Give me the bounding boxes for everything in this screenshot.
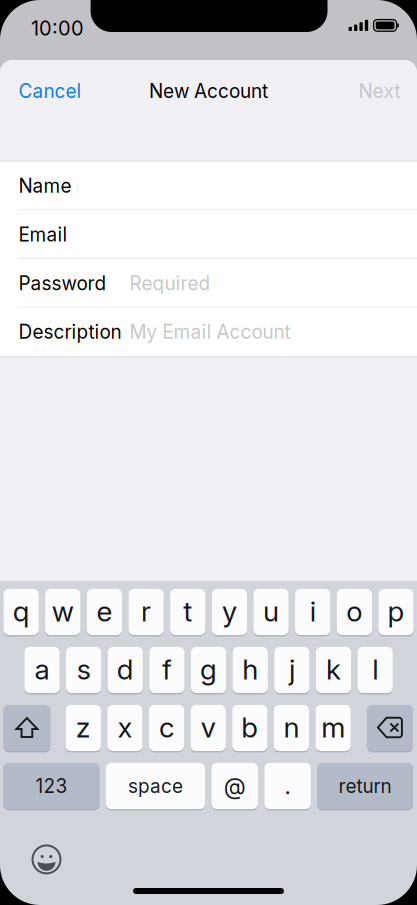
staticText: c (159, 710, 174, 744)
button[interactable]: u (253, 588, 289, 636)
staticText: f (162, 652, 172, 686)
staticText: New Account (149, 79, 268, 102)
staticText: l (372, 652, 378, 686)
staticText: Required (129, 272, 210, 295)
staticText: a (34, 652, 49, 686)
staticText: 10:00 (31, 16, 84, 40)
staticText: u (263, 594, 279, 628)
button[interactable]: g (191, 646, 226, 694)
button[interactable]: v (190, 704, 226, 752)
staticText: m (321, 710, 345, 744)
staticText: space (128, 774, 183, 797)
button[interactable]: . (264, 762, 311, 810)
staticText: 123 (35, 774, 67, 797)
button[interactable]: m (315, 704, 351, 752)
button[interactable]: s (66, 646, 101, 694)
button[interactable]: @ (211, 762, 258, 810)
button[interactable]: y (212, 588, 247, 636)
button[interactable]: space (106, 762, 205, 810)
staticText: n (283, 710, 299, 744)
staticText: k (326, 652, 341, 686)
staticText: w (52, 594, 74, 628)
staticText: e (96, 594, 112, 628)
button[interactable]: Delete (367, 704, 413, 752)
button[interactable]: d (108, 646, 143, 694)
button[interactable]: Email (0, 210, 417, 259)
button[interactable]: a (24, 646, 60, 694)
button[interactable]: Shift (3, 704, 50, 752)
button[interactable]: Description (0, 308, 417, 356)
staticText: i (310, 594, 316, 628)
button[interactable]: r (128, 588, 164, 636)
button[interactable]: return (317, 762, 413, 810)
button[interactable]: k (316, 646, 351, 694)
staticText: Description (18, 320, 121, 343)
button[interactable]: q (3, 588, 39, 636)
staticText: y (222, 594, 237, 628)
button[interactable]: i (295, 588, 330, 636)
button[interactable]: 123 (3, 762, 99, 810)
button[interactable]: l (357, 646, 393, 694)
button[interactable]: j (274, 646, 309, 694)
button[interactable]: h (233, 646, 268, 694)
button[interactable]: p (378, 588, 414, 636)
staticText: @ (224, 772, 246, 800)
staticText: Cancel (18, 79, 81, 102)
staticText: v (201, 710, 216, 744)
button[interactable]: Next (340, 69, 400, 113)
staticText: x (117, 710, 132, 744)
staticText: s (77, 652, 91, 686)
staticText: My Email Account (129, 320, 290, 343)
staticText: o (346, 594, 362, 628)
staticText: Email (18, 223, 67, 246)
button[interactable]: c (149, 704, 184, 752)
button[interactable]: Password (0, 259, 417, 308)
staticText: h (242, 652, 258, 686)
button[interactable]: b (232, 704, 267, 752)
staticText: q (13, 594, 30, 628)
button[interactable]: Name (0, 161, 417, 210)
staticText: t (183, 594, 192, 628)
staticText: j (289, 652, 295, 686)
button[interactable]: w (45, 588, 80, 636)
staticText: p (387, 594, 404, 628)
button[interactable]: f (149, 646, 185, 694)
staticText: r (141, 594, 151, 628)
button[interactable]: e (87, 588, 122, 636)
button[interactable]: n (274, 704, 309, 752)
button[interactable]: o (337, 588, 372, 636)
staticText: Name (18, 174, 71, 197)
button[interactable]: z (66, 704, 101, 752)
staticText: b (241, 710, 258, 744)
staticText: z (76, 710, 91, 744)
staticText: g (200, 652, 217, 686)
staticText: return (339, 774, 392, 797)
staticText: . (285, 772, 291, 800)
staticText: Next (358, 79, 400, 102)
staticText: Password (18, 272, 106, 295)
staticText: d (117, 652, 134, 686)
button[interactable]: x (107, 704, 142, 752)
button[interactable]: t (170, 588, 205, 636)
button[interactable]: Emoji keyboard (27, 840, 65, 878)
button[interactable]: Cancel (18, 69, 90, 113)
